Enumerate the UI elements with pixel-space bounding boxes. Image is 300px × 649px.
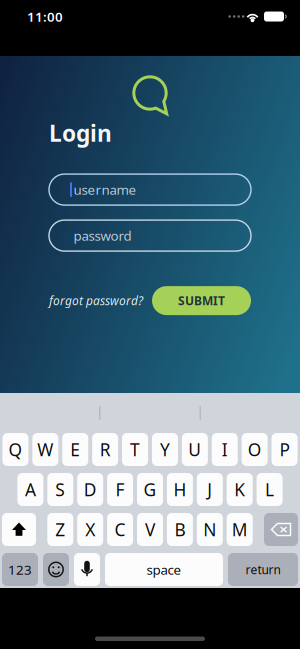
- staticText: J: [207, 478, 212, 501]
- staticText: R: [100, 438, 111, 461]
- button[interactable]: 123: [2, 553, 38, 586]
- staticText: T: [130, 438, 140, 461]
- staticText: Z: [55, 518, 65, 541]
- staticText: X: [85, 518, 95, 541]
- button[interactable]: B: [167, 513, 193, 546]
- staticText: V: [145, 518, 155, 541]
- staticText: forgot password?: [49, 293, 143, 308]
- button[interactable]: T: [122, 433, 148, 466]
- button[interactable]: G: [137, 473, 163, 506]
- button[interactable]: I: [212, 433, 238, 466]
- button[interactable]: A: [17, 473, 43, 506]
- staticText: H: [173, 478, 186, 501]
- staticText: F: [116, 478, 125, 501]
- button[interactable]: Shift: [2, 513, 36, 546]
- staticText: K: [234, 478, 245, 501]
- staticText: A: [25, 478, 36, 501]
- button[interactable]: V: [137, 513, 163, 546]
- staticText: Y: [160, 438, 170, 461]
- button[interactable]: Y: [152, 433, 178, 466]
- button[interactable]: H: [167, 473, 193, 506]
- staticText: E: [70, 438, 80, 461]
- staticText: I: [222, 438, 228, 461]
- button[interactable]: Z: [47, 513, 73, 546]
- button[interactable]: return: [228, 553, 298, 586]
- button[interactable]: Q: [2, 433, 28, 466]
- button[interactable]: M: [227, 513, 253, 546]
- staticText: return: [245, 561, 280, 577]
- button[interactable]: Dictation: [74, 553, 100, 586]
- staticText: SUBMIT: [178, 293, 225, 308]
- button[interactable]: O: [242, 433, 268, 466]
- staticText: 11:00: [27, 8, 63, 25]
- button[interactable]: X: [77, 513, 103, 546]
- staticText: Q: [8, 438, 22, 461]
- staticText: U: [188, 438, 201, 461]
- button[interactable]: E: [62, 433, 88, 466]
- button[interactable]: SUBMIT: [152, 286, 251, 315]
- staticText: 123: [8, 561, 32, 578]
- staticText: W: [37, 438, 53, 461]
- staticText: D: [84, 478, 97, 501]
- button[interactable]: N: [197, 513, 223, 546]
- button[interactable]: P: [272, 433, 298, 466]
- button[interactable]: J: [197, 473, 223, 506]
- button[interactable]: space: [105, 553, 223, 586]
- button[interactable]: S: [47, 473, 73, 506]
- staticText: S: [55, 478, 65, 501]
- staticText: B: [174, 518, 185, 541]
- button[interactable]: C: [107, 513, 133, 546]
- staticText: O: [248, 438, 262, 461]
- staticText: C: [115, 518, 126, 541]
- button[interactable]: F: [107, 473, 133, 506]
- button[interactable]: W: [32, 433, 58, 466]
- staticText: P: [280, 438, 290, 461]
- staticText: space: [146, 561, 181, 578]
- button[interactable]: L: [257, 473, 283, 506]
- staticText: N: [203, 518, 216, 541]
- staticText: M: [232, 518, 248, 541]
- button[interactable]: Emoji: [43, 553, 69, 586]
- staticText: password: [73, 227, 131, 244]
- staticText: G: [143, 478, 156, 501]
- button[interactable]: forgot password?: [49, 291, 150, 311]
- staticText: username: [73, 181, 136, 198]
- button[interactable]: D: [77, 473, 103, 506]
- button[interactable]: username: [49, 174, 251, 205]
- button[interactable]: Delete: [264, 513, 298, 546]
- button[interactable]: R: [92, 433, 118, 466]
- button[interactable]: K: [227, 473, 253, 506]
- button[interactable]: U: [182, 433, 208, 466]
- staticText: Login: [49, 118, 112, 148]
- button[interactable]: password: [49, 220, 251, 251]
- staticText: L: [265, 478, 274, 501]
